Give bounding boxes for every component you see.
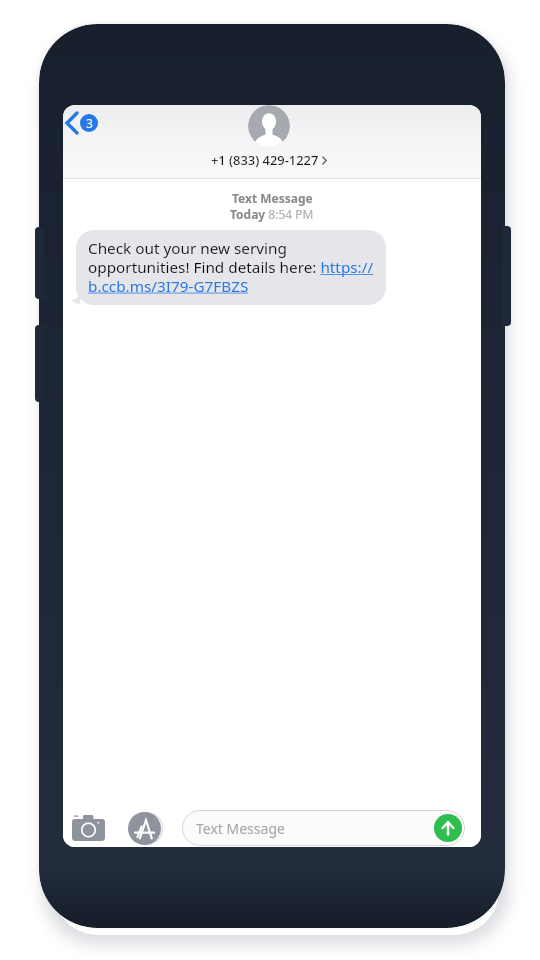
button[interactable]: App Store [125, 809, 163, 847]
staticText: Check out your new serving opportunities… [88, 238, 374, 296]
staticText: +1 (833) 429-1227 [211, 151, 319, 169]
button[interactable]: Check out your new serving opportunities… [76, 230, 386, 305]
button[interactable]: Text Message [182, 810, 465, 846]
staticText: Text Message [232, 190, 313, 206]
button[interactable]: Send [434, 814, 462, 842]
button[interactable]: Back, 3 unread [65, 111, 98, 135]
button[interactable]: Camera [68, 812, 108, 844]
staticText: Text Message [196, 819, 285, 838]
staticText: Today 8:54 PM [230, 206, 314, 222]
button[interactable]: +1 (833) 429-1227 [211, 105, 327, 169]
staticText: 3 [86, 115, 93, 131]
